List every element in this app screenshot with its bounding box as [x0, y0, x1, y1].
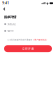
staticText: 我已阅读并同意开通服务 — [9, 39, 32, 41]
button[interactable]: 立即开通 — [4, 45, 52, 52]
staticText: 立即开通 — [22, 47, 34, 50]
staticText: 实名认证 — [7, 23, 15, 26]
staticText: 银行卡 — [7, 29, 13, 32]
staticText: 《用户服务协议》 — [32, 39, 48, 41]
staticText: 账单详情 — [4, 15, 16, 19]
staticText: 9:41 — [2, 1, 9, 5]
button[interactable]: Back — [1, 5, 8, 12]
